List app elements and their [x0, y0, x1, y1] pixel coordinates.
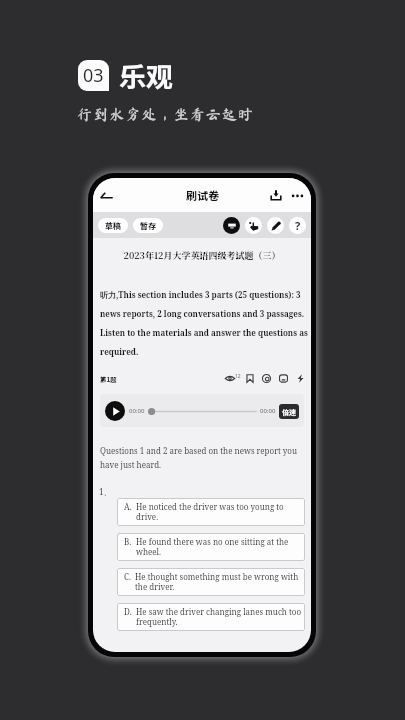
staticText: B. — [124, 536, 132, 547]
button[interactable]: 暂存 — [133, 218, 163, 233]
staticText: He thought something must be wrong with … — [135, 571, 302, 593]
staticText: Questions 1 and 2 are based on the news … — [100, 445, 304, 470]
staticText: He noticed the driver was too young to d… — [136, 501, 302, 523]
staticText: 第1题 — [100, 374, 117, 383]
button[interactable]: Views — [225, 374, 241, 383]
staticText: 乐观 — [119, 56, 173, 95]
staticText: 倍速 — [282, 407, 296, 417]
staticText: 暂存 — [140, 220, 156, 232]
button[interactable]: Help — [289, 217, 306, 234]
button[interactable]: Play — [105, 401, 125, 421]
button[interactable]: Back — [97, 186, 115, 204]
staticText: 03 — [83, 63, 104, 88]
staticText: 草稿 — [105, 220, 121, 232]
button[interactable]: A. — [117, 498, 305, 526]
staticText: 12 — [235, 373, 241, 380]
button[interactable]: More options — [289, 187, 305, 203]
button[interactable]: 草稿 — [98, 218, 128, 233]
staticText: 2023年12月大学英语四级考试题（三） — [93, 249, 311, 262]
button[interactable]: Attach — [262, 374, 271, 383]
staticText: A. — [124, 501, 132, 512]
staticText: 刷试卷 — [186, 187, 219, 203]
button[interactable]: C. — [117, 568, 305, 596]
button[interactable]: D. — [117, 603, 305, 631]
staticText: 行到水穷处，坐看云起时 — [77, 107, 255, 122]
staticText: 00:00 — [260, 407, 276, 415]
staticText: C. — [124, 571, 131, 582]
staticText: He saw the driver changing lanes much to… — [136, 606, 302, 628]
button[interactable]: Note — [279, 374, 288, 383]
staticText: 1、 — [99, 486, 112, 497]
staticText: 听力,This section includes 3 parts (25 que… — [100, 289, 311, 357]
button[interactable]: Bookmark — [246, 374, 254, 383]
staticText: 00:00 — [129, 407, 145, 415]
button[interactable]: B. — [117, 533, 305, 561]
button[interactable]: 倍速 — [279, 404, 299, 419]
button[interactable]: Eraser — [223, 217, 240, 234]
button[interactable]: Download — [268, 187, 284, 203]
button[interactable]: Select — [245, 217, 262, 234]
staticText: He found there was no one sitting at the… — [136, 536, 302, 558]
button[interactable]: Pen — [267, 217, 284, 234]
button[interactable]: Flash — [296, 374, 305, 383]
staticText: D. — [124, 606, 132, 617]
staticText: ? — [295, 218, 301, 233]
